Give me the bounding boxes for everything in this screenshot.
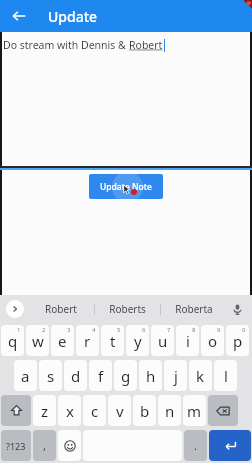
staticText: i (186, 331, 190, 351)
staticText: a (21, 366, 30, 386)
staticText: 0 (242, 326, 246, 334)
staticText: Roberts (109, 302, 146, 316)
staticText: e (58, 331, 67, 351)
staticText: t (110, 331, 116, 351)
staticText: d (71, 366, 81, 386)
staticText: Do stream with Dennis & (3, 38, 129, 52)
button[interactable]: Voice input (228, 300, 246, 318)
staticText: y (134, 331, 142, 351)
button[interactable]: s (39, 360, 62, 391)
staticText: 6 (142, 326, 146, 334)
staticText: b (140, 401, 150, 421)
button[interactable]: key (209, 430, 251, 461)
staticText: Update (48, 7, 98, 26)
button[interactable]: . (184, 430, 207, 461)
staticText: Roberta (175, 302, 213, 316)
button[interactable]: key (1, 395, 31, 426)
staticText: n (165, 401, 175, 421)
button[interactable]: e (51, 325, 74, 356)
button[interactable]: t (101, 325, 124, 356)
staticText: , (43, 438, 46, 453)
staticText: w (32, 331, 44, 351)
button[interactable]: x (58, 395, 81, 426)
button[interactable]: y (126, 325, 149, 356)
button[interactable]: Roberta (161, 295, 226, 323)
staticText: p (233, 331, 243, 351)
staticText: x (66, 401, 74, 421)
staticText: z (41, 401, 49, 421)
staticText: 4 (92, 326, 96, 334)
staticText: 2 (42, 326, 46, 334)
button[interactable]: v (108, 395, 131, 426)
button[interactable]: More suggestions (6, 300, 24, 318)
staticText: k (196, 366, 205, 386)
staticText: Update Note (100, 181, 152, 193)
staticText: u (158, 331, 168, 351)
button[interactable]: b (133, 395, 156, 426)
staticText: s (47, 366, 55, 386)
button[interactable]: l (214, 360, 237, 391)
button[interactable]: j (164, 360, 187, 391)
button[interactable]: d (64, 360, 87, 391)
button[interactable]: ?123 (1, 430, 31, 461)
staticText: Robert (45, 302, 77, 316)
staticText: 7 (167, 326, 171, 334)
staticText: 3 (67, 326, 71, 334)
button[interactable]: Robert (28, 295, 94, 323)
staticText: 5 (117, 326, 121, 334)
button[interactable]: key (58, 430, 81, 461)
button[interactable]: c (83, 395, 106, 426)
staticText: . (194, 438, 197, 453)
staticText: Robert (129, 38, 163, 52)
staticText: l (224, 366, 228, 386)
button[interactable]: key (208, 395, 238, 426)
staticText: q (8, 331, 18, 351)
button[interactable]: q (1, 325, 24, 356)
button[interactable]: m (183, 395, 206, 426)
staticText: v (116, 401, 124, 421)
staticText: c (91, 401, 99, 421)
button[interactable]: Back (6, 3, 32, 29)
button[interactable]: a (14, 360, 37, 391)
staticText: 9 (217, 326, 221, 334)
staticText: j (174, 366, 178, 386)
staticText: g (121, 366, 131, 386)
button[interactable]: h (139, 360, 162, 391)
button[interactable]: g (114, 360, 137, 391)
staticText: h (146, 366, 156, 386)
staticText: r (84, 331, 91, 351)
button[interactable]: f (89, 360, 112, 391)
staticText: 1 (17, 326, 21, 334)
button[interactable]: r (76, 325, 99, 356)
staticText: o (208, 331, 218, 351)
button[interactable]: u (151, 325, 174, 356)
button[interactable]: w (26, 325, 49, 356)
button[interactable]: z (33, 395, 56, 426)
staticText: ?123 (6, 440, 26, 452)
button[interactable]: Roberts (95, 295, 160, 323)
staticText: f (98, 366, 104, 386)
staticText: 8 (192, 326, 196, 334)
button[interactable]: k (189, 360, 212, 391)
button[interactable]: i (176, 325, 199, 356)
staticText: m (187, 401, 202, 421)
button[interactable]: Update Note (89, 174, 163, 199)
button[interactable]: , (33, 430, 56, 461)
button[interactable]: o (201, 325, 224, 356)
button[interactable]: p (226, 325, 249, 356)
button[interactable]: n (158, 395, 181, 426)
